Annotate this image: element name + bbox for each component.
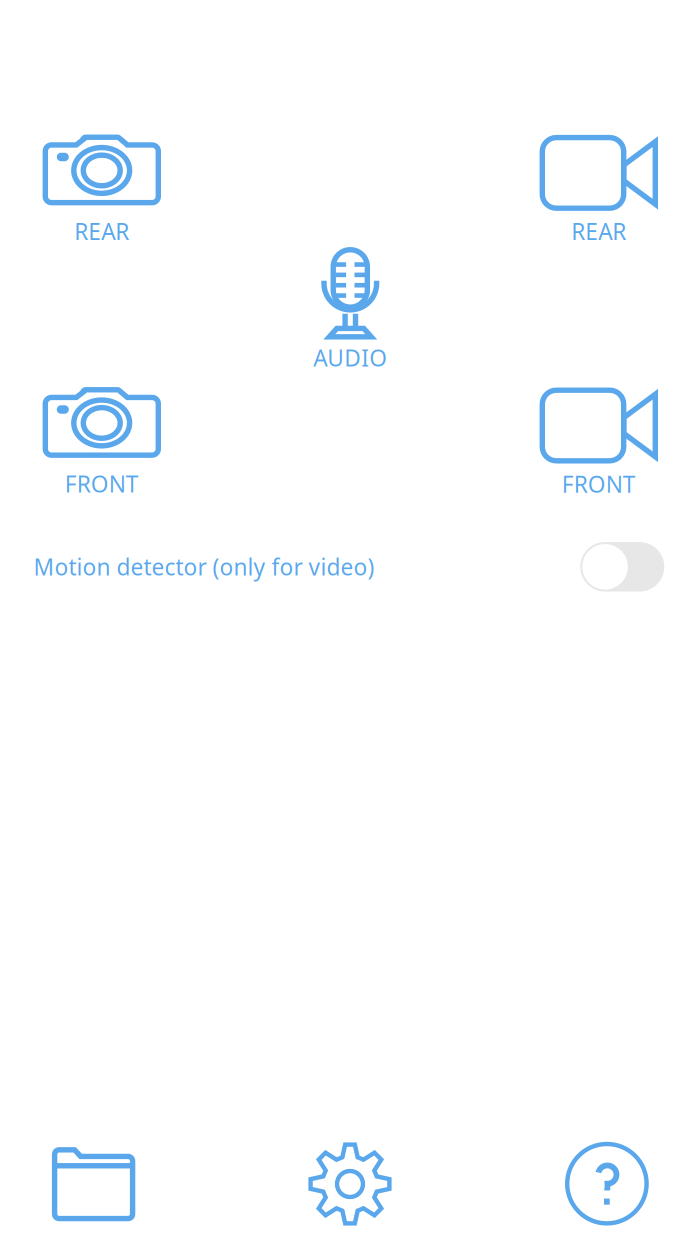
staticText: REAR — [571, 216, 626, 246]
button[interactable]: Help — [565, 1142, 649, 1226]
button[interactable]: REAR — [43, 134, 161, 246]
staticText: AUDIO — [313, 343, 387, 373]
staticText: FRONT — [562, 469, 636, 499]
button[interactable]: FRONT — [540, 387, 658, 499]
staticText: REAR — [74, 216, 129, 246]
button[interactable]: Settings — [308, 1142, 392, 1226]
button[interactable]: Files — [52, 1147, 135, 1221]
button[interactable]: REAR — [540, 135, 658, 246]
button[interactable]: AUDIO — [313, 247, 387, 373]
staticText: Motion detector (only for video) — [34, 552, 375, 582]
staticText: FRONT — [65, 469, 139, 499]
button[interactable]: FRONT — [43, 387, 161, 499]
button[interactable]: Motion detector — [580, 542, 664, 591]
